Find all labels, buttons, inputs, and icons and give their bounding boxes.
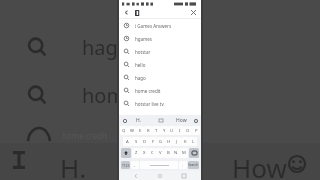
button[interactable]: home credit [119, 84, 201, 97]
button[interactable]: Space [140, 161, 178, 169]
button[interactable]: hotstar [119, 45, 201, 58]
staticText: E [139, 128, 142, 134]
button[interactable]: L [189, 137, 197, 146]
button[interactable]: home cre [26, 78, 171, 112]
button[interactable]: I [176, 126, 184, 135]
staticText: D [143, 139, 147, 145]
button[interactable]: B [164, 148, 172, 158]
staticText: B [167, 150, 170, 156]
button[interactable]: E [136, 126, 144, 135]
button[interactable]: hago [119, 71, 201, 84]
staticText: Q [122, 128, 126, 134]
staticText: V [159, 150, 162, 156]
staticText: hotstar live tv [135, 101, 164, 107]
staticText: J [176, 139, 178, 145]
staticText: C [151, 150, 154, 156]
button[interactable]: D [141, 137, 149, 146]
button[interactable]: Q [120, 126, 128, 135]
button[interactable]: Shift [121, 148, 131, 158]
button[interactable]: V [156, 148, 164, 158]
staticText: H. [60, 150, 87, 180]
staticText: hotstar [135, 49, 151, 55]
button[interactable]: Back [122, 8, 131, 17]
staticText: hago [82, 34, 130, 61]
button[interactable]: Home [153, 171, 167, 180]
button[interactable]: Search [188, 161, 199, 169]
staticText: How [176, 117, 187, 124]
staticText: M [182, 150, 186, 156]
button[interactable]: hotstar live tv [119, 97, 201, 110]
staticText: W [130, 128, 134, 134]
button[interactable]: Backspace [189, 148, 199, 158]
staticText: N [174, 150, 178, 156]
button[interactable]: Recents [177, 171, 191, 180]
button[interactable]: , [131, 161, 139, 169]
button[interactable]: hgames [119, 32, 201, 45]
staticText: F [152, 139, 155, 145]
staticText: home credit [62, 130, 108, 141]
button[interactable]: N [172, 148, 180, 158]
button[interactable]: W [128, 126, 136, 135]
button[interactable]: O [184, 126, 192, 135]
button[interactable]: M [180, 148, 188, 158]
button[interactable]: Symbols [121, 161, 130, 169]
staticText: G [159, 139, 163, 145]
button[interactable]: U [168, 126, 176, 135]
button[interactable]: F [149, 137, 157, 146]
button[interactable]: G [157, 137, 165, 146]
button[interactable]: X [140, 148, 148, 158]
staticText: How [232, 150, 287, 180]
staticText: H [167, 139, 171, 145]
button[interactable]: i Games Answers [119, 19, 201, 32]
staticText: R [147, 128, 150, 134]
button[interactable]: H [165, 137, 173, 146]
button[interactable]: Y [160, 126, 168, 135]
button[interactable]: Voice input [121, 117, 128, 124]
staticText: K [184, 139, 187, 145]
staticText: Y [163, 128, 166, 134]
staticText: S [135, 139, 138, 145]
staticText: hello [135, 62, 146, 68]
button[interactable]: H. [128, 117, 150, 124]
button[interactable]: Z [132, 148, 140, 158]
button[interactable]: hello [119, 58, 201, 71]
staticText: . [182, 162, 184, 168]
staticText: ?123 [122, 163, 130, 168]
staticText: Z [135, 150, 138, 156]
button[interactable]: J [173, 137, 181, 146]
staticText: A [126, 139, 129, 145]
staticText: i Games Answers [135, 23, 172, 29]
staticText: Search [188, 163, 199, 167]
staticText: hgames [135, 36, 152, 42]
button[interactable] [150, 119, 171, 122]
button[interactable]: T [152, 126, 160, 135]
button[interactable]: P [192, 126, 200, 135]
staticText: P [195, 128, 198, 134]
button[interactable] [135, 7, 189, 18]
staticText: H. [136, 117, 142, 124]
button[interactable]: C [148, 148, 156, 158]
button[interactable]: hago [26, 30, 130, 64]
staticText: , [134, 162, 136, 168]
button[interactable]: S [132, 137, 141, 146]
button[interactable]: Keyboard settings [192, 117, 199, 124]
button[interactable]: K [181, 137, 189, 146]
button[interactable]: How [171, 117, 192, 124]
button[interactable]: R [144, 126, 152, 135]
staticText: O [186, 128, 190, 134]
staticText: home cre [82, 82, 171, 109]
staticText: hago [135, 75, 146, 81]
staticText: X [143, 150, 146, 156]
staticText: home credit [135, 88, 161, 94]
button[interactable]: . [179, 161, 187, 169]
button[interactable]: Back [129, 171, 143, 180]
staticText: U [170, 128, 174, 134]
staticText: I [179, 128, 181, 134]
button[interactable]: Clear [189, 8, 198, 17]
staticText: T [155, 128, 158, 134]
staticText: L [192, 139, 195, 145]
button[interactable]: A [123, 137, 132, 146]
